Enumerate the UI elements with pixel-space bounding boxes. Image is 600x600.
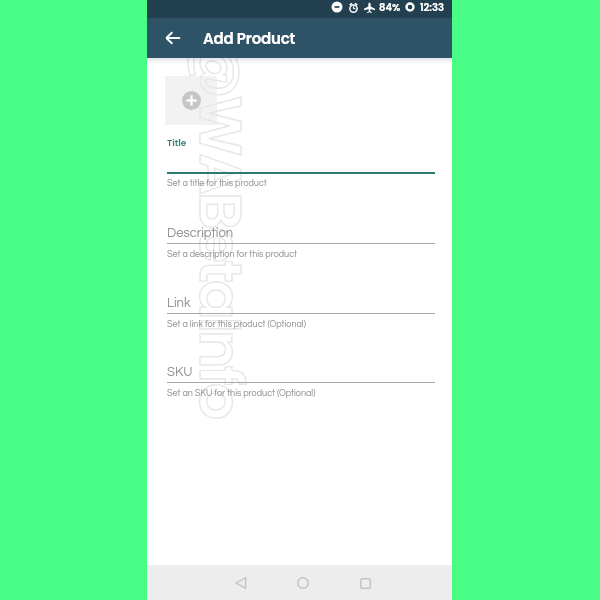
staticText: 12:33: [420, 0, 444, 14]
button[interactable]: Recent apps: [349, 567, 381, 599]
button[interactable]: SKU: [167, 365, 435, 385]
staticText: SKU: [167, 365, 193, 378]
staticText: Set a description for this product: [167, 250, 298, 259]
staticText: 84%: [379, 0, 401, 14]
staticText: Add Product: [203, 28, 296, 49]
button[interactable]: Add product photo: [165, 76, 217, 125]
staticText: Description: [167, 226, 234, 239]
button[interactable]: Navigate up: [161, 26, 185, 50]
button[interactable]: Link: [167, 296, 435, 316]
button[interactable]: Back: [225, 567, 257, 599]
button[interactable]: Title: [167, 136, 435, 175]
staticText: Title: [167, 137, 187, 150]
staticText: Set an SKU for this product (Optional): [167, 389, 316, 398]
staticText: Link: [167, 296, 191, 309]
staticText: Set a link for this product (Optional): [167, 320, 306, 329]
button[interactable]: Description: [167, 226, 435, 246]
button[interactable]: Home: [287, 567, 319, 599]
staticText: Set a title for this product: [167, 179, 267, 188]
